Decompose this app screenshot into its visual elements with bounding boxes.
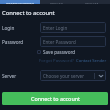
staticText: Connect to account (31, 95, 80, 102)
staticText: Contact Sender (76, 58, 107, 64)
staticText: Connect to account (2, 9, 55, 17)
staticText: LOCAL FILE (85, 1, 99, 4)
staticText: Forgot Password? (39, 58, 74, 64)
button[interactable]: Save password (37, 48, 76, 55)
button[interactable]: Forgot Password? (39, 58, 74, 64)
button[interactable]: Connect to account (2, 92, 108, 105)
staticText: Server (2, 73, 17, 79)
staticText: OPEN LINK (50, 1, 64, 4)
staticText: CONNECT TO ACCOUNT (6, 1, 34, 4)
staticText: Save password (43, 49, 76, 55)
button[interactable]: CONNECT TO ACCOUNT (0, 0, 40, 4)
staticText: Enter Password (43, 39, 76, 45)
button[interactable]: Enter Login (40, 22, 106, 33)
button[interactable]: Enter Password (40, 36, 106, 47)
button[interactable]: Contact Sender (76, 58, 107, 64)
other: Choose server (98, 74, 104, 78)
button[interactable]: Choose your server (40, 70, 106, 81)
staticText: Choose your server (43, 73, 84, 79)
staticText: Password (2, 39, 24, 45)
staticText: Enter Login (43, 25, 68, 31)
staticText: Login (2, 25, 15, 31)
button[interactable]: LOCAL FILE (73, 0, 110, 4)
button[interactable]: OPEN LINK (40, 0, 73, 4)
